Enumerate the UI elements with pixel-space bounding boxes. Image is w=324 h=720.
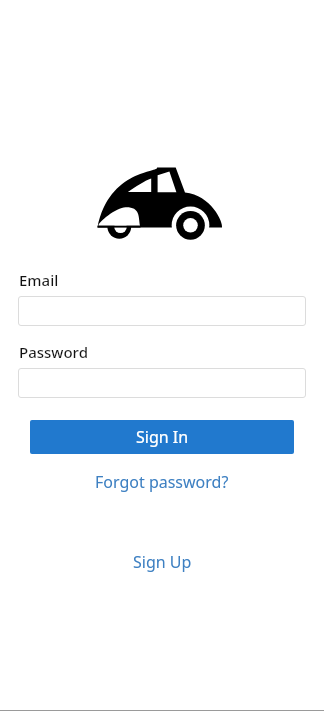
button[interactable]: Sign Up: [129, 547, 196, 577]
button[interactable]: Sign In: [30, 420, 294, 454]
button[interactable]: [18, 296, 306, 326]
other: Car logo: [97, 167, 222, 240]
button[interactable]: Forgot password?: [91, 467, 233, 497]
staticText: Sign In: [136, 426, 189, 448]
staticText: Email: [19, 270, 59, 290]
button[interactable]: [18, 368, 306, 398]
staticText: Sign Up: [133, 551, 192, 573]
staticText: Password: [19, 342, 88, 362]
staticText: Forgot password?: [95, 471, 229, 493]
